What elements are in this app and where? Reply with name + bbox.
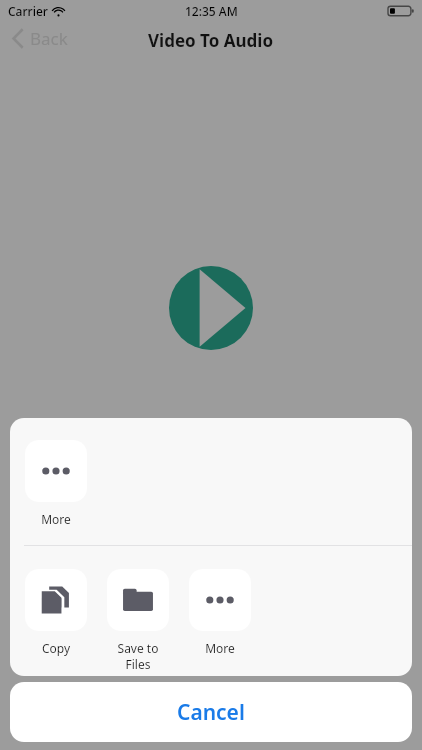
button[interactable]: More — [189, 569, 251, 656]
staticText: More — [25, 511, 87, 527]
button[interactable]: Save to Files — [107, 569, 169, 672]
staticText: Copy — [25, 640, 87, 656]
button[interactable]: Back — [8, 23, 72, 54]
staticText: More — [189, 640, 251, 656]
staticText: Carrier — [8, 3, 48, 19]
staticText: 12:35 AM — [185, 3, 238, 19]
staticText: Save to Files — [107, 640, 169, 672]
button[interactable]: Cancel — [10, 682, 412, 742]
staticText: Video To Audio — [148, 29, 274, 52]
button[interactable]: Play — [169, 266, 253, 350]
staticText: Cancel — [177, 698, 245, 727]
staticText: Back — [30, 27, 68, 50]
button[interactable]: Copy — [25, 569, 87, 656]
button[interactable]: More — [25, 440, 87, 527]
